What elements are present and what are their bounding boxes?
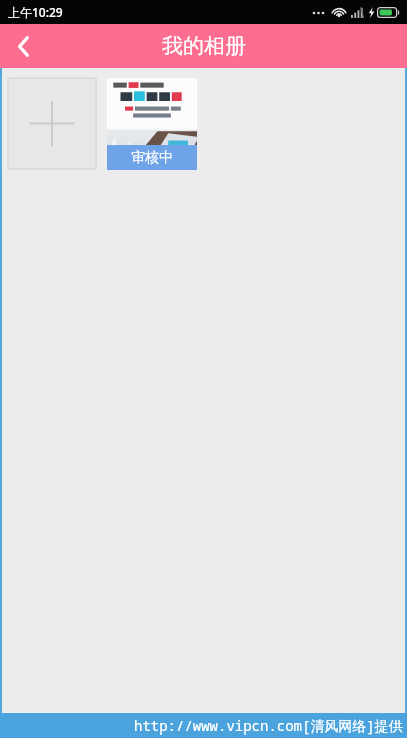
button[interactable]: Add photo xyxy=(8,78,96,169)
staticText: http://www.vipcn.com[清风网络]提供 xyxy=(134,716,403,735)
button[interactable]: Photo pending review xyxy=(107,78,197,170)
staticText: 审核中 xyxy=(131,149,173,167)
staticText: 上午10:29 xyxy=(8,4,63,20)
button[interactable]: Back xyxy=(0,24,46,68)
staticText: 我的相册 xyxy=(162,33,246,59)
